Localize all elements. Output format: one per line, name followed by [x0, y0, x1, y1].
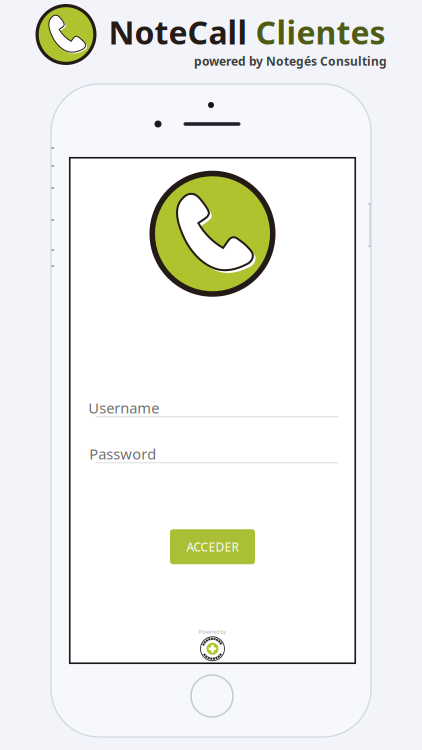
- button[interactable]: ACCEDER: [170, 529, 255, 564]
- staticText: Powered by: [198, 628, 226, 635]
- staticText: powered by Notegés Consulting: [194, 53, 387, 69]
- staticText: Password: [89, 444, 156, 463]
- staticText: NoteCall: [108, 11, 247, 53]
- staticText: Clientes: [247, 11, 385, 53]
- staticText: Username: [88, 398, 159, 417]
- staticText: ACCEDER: [186, 539, 238, 555]
